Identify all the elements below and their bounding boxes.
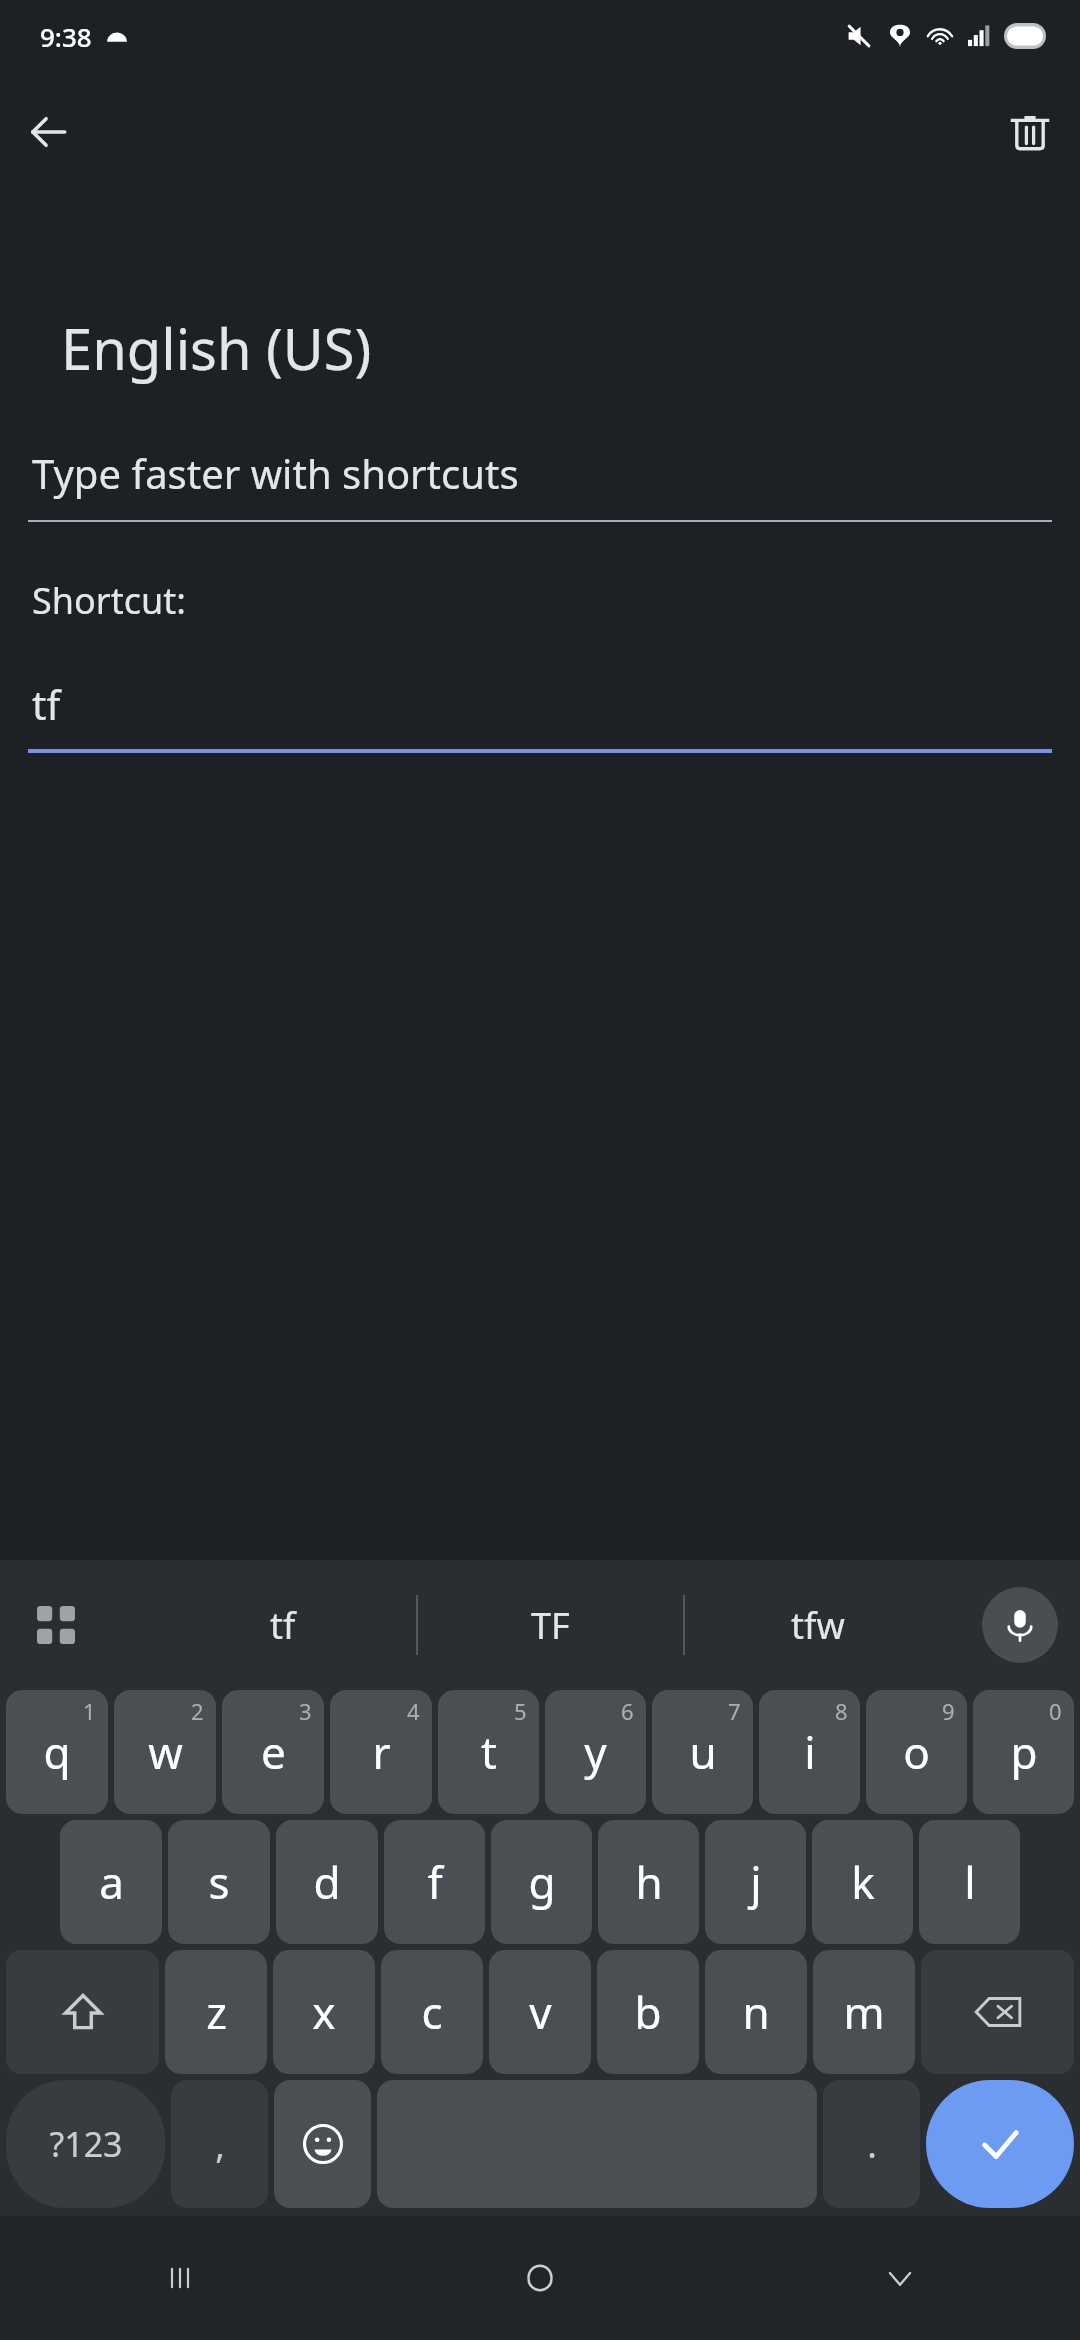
staticText: q bbox=[43, 1722, 71, 1782]
staticText: s bbox=[208, 1852, 230, 1912]
staticText: Shortcut: bbox=[32, 576, 186, 625]
staticText: m bbox=[843, 1982, 885, 2042]
staticText: o bbox=[903, 1722, 930, 1782]
button[interactable]: h bbox=[598, 1820, 699, 1944]
button[interactable]: v bbox=[489, 1950, 591, 2074]
staticText: 9:38 bbox=[40, 19, 92, 54]
button[interactable]: z bbox=[165, 1950, 267, 2074]
staticText: . bbox=[867, 2120, 877, 2169]
staticText: 3 bbox=[299, 1696, 312, 1726]
staticText: w bbox=[148, 1722, 183, 1782]
button[interactable]: , bbox=[171, 2080, 268, 2208]
button[interactable]: ?123 bbox=[6, 2080, 165, 2208]
staticText: tfw bbox=[791, 1601, 845, 1650]
staticText: x bbox=[312, 1982, 336, 2042]
staticText: k bbox=[851, 1852, 875, 1912]
button[interactable]: Back bbox=[14, 98, 82, 166]
button[interactable]: Backspace bbox=[921, 1950, 1074, 2074]
button[interactable]: b bbox=[597, 1950, 699, 2074]
button[interactable]: Emoji bbox=[274, 2080, 371, 2208]
staticText: 0 bbox=[1049, 1696, 1062, 1726]
button[interactable]: tfw bbox=[685, 1560, 950, 1690]
staticText: 9 bbox=[942, 1696, 955, 1726]
staticText: b bbox=[634, 1982, 662, 2042]
button[interactable]: t bbox=[438, 1690, 539, 1814]
button[interactable]: Toolbar bbox=[14, 1583, 98, 1667]
button[interactable]: w bbox=[114, 1690, 216, 1814]
staticText: 5 bbox=[514, 1696, 527, 1726]
button[interactable]: y bbox=[545, 1690, 646, 1814]
button[interactable]: Voice input bbox=[982, 1587, 1058, 1663]
staticText: 2 bbox=[191, 1696, 204, 1726]
staticText: e bbox=[261, 1722, 286, 1782]
button[interactable]: s bbox=[168, 1820, 270, 1944]
button[interactable]: g bbox=[491, 1820, 592, 1944]
button[interactable]: Shift bbox=[6, 1950, 159, 2074]
staticText: i bbox=[804, 1722, 816, 1782]
staticText: , bbox=[215, 2120, 225, 2169]
staticText: 1 bbox=[83, 1696, 96, 1726]
staticText: l bbox=[964, 1852, 976, 1912]
staticText: English (US) bbox=[61, 310, 372, 386]
button[interactable]: Home bbox=[360, 2216, 720, 2340]
staticText: z bbox=[206, 1982, 227, 2042]
staticText: f bbox=[427, 1852, 443, 1912]
staticText: n bbox=[742, 1982, 770, 2042]
button[interactable]: c bbox=[381, 1950, 483, 2074]
staticText: y bbox=[584, 1722, 607, 1782]
staticText: v bbox=[529, 1982, 552, 2042]
staticText: 7 bbox=[728, 1696, 741, 1726]
button[interactable]: a bbox=[60, 1820, 162, 1944]
staticText: ?123 bbox=[49, 2121, 123, 2167]
button[interactable]: m bbox=[813, 1950, 915, 2074]
staticText: t bbox=[481, 1722, 497, 1782]
button[interactable]: r bbox=[330, 1690, 432, 1814]
button[interactable]: Delete bbox=[996, 98, 1064, 166]
staticText: u bbox=[689, 1722, 717, 1782]
staticText: Type faster with shortcuts bbox=[32, 446, 519, 500]
button[interactable]: Hide keyboard bbox=[720, 2216, 1080, 2340]
staticText: tf bbox=[32, 677, 61, 731]
staticText: a bbox=[99, 1852, 124, 1912]
button[interactable]: f bbox=[384, 1820, 485, 1944]
staticText: 8 bbox=[835, 1696, 848, 1726]
staticText: tf bbox=[270, 1601, 296, 1650]
button[interactable]: e bbox=[222, 1690, 324, 1814]
staticText: 4 bbox=[407, 1696, 420, 1726]
staticText: r bbox=[372, 1722, 391, 1782]
button[interactable]: u bbox=[652, 1690, 753, 1814]
button[interactable]: p bbox=[973, 1690, 1074, 1814]
staticText: d bbox=[313, 1852, 341, 1912]
button[interactable]: j bbox=[705, 1820, 806, 1944]
button[interactable]: . bbox=[823, 2080, 920, 2208]
button[interactable]: o bbox=[866, 1690, 967, 1814]
button[interactable]: q bbox=[6, 1690, 108, 1814]
button[interactable]: Recents bbox=[0, 2216, 360, 2340]
staticText: g bbox=[528, 1852, 556, 1912]
button[interactable]: TF bbox=[418, 1560, 683, 1690]
button[interactable]: l bbox=[919, 1820, 1020, 1944]
button[interactable]: i bbox=[759, 1690, 860, 1814]
staticText: j bbox=[750, 1852, 762, 1912]
staticText: h bbox=[635, 1852, 663, 1912]
button[interactable]: d bbox=[276, 1820, 378, 1944]
staticText: 6 bbox=[621, 1696, 634, 1726]
button[interactable]: tf bbox=[150, 1560, 416, 1690]
button[interactable]: k bbox=[812, 1820, 913, 1944]
button[interactable]: tf bbox=[28, 677, 1052, 753]
button[interactable]: Type faster with shortcuts bbox=[28, 446, 1052, 522]
staticText: TF bbox=[531, 1601, 570, 1650]
staticText: c bbox=[421, 1982, 443, 2042]
button[interactable]: x bbox=[273, 1950, 375, 2074]
staticText: p bbox=[1010, 1722, 1038, 1782]
button[interactable]: n bbox=[705, 1950, 807, 2074]
button[interactable]: Done bbox=[926, 2080, 1074, 2208]
